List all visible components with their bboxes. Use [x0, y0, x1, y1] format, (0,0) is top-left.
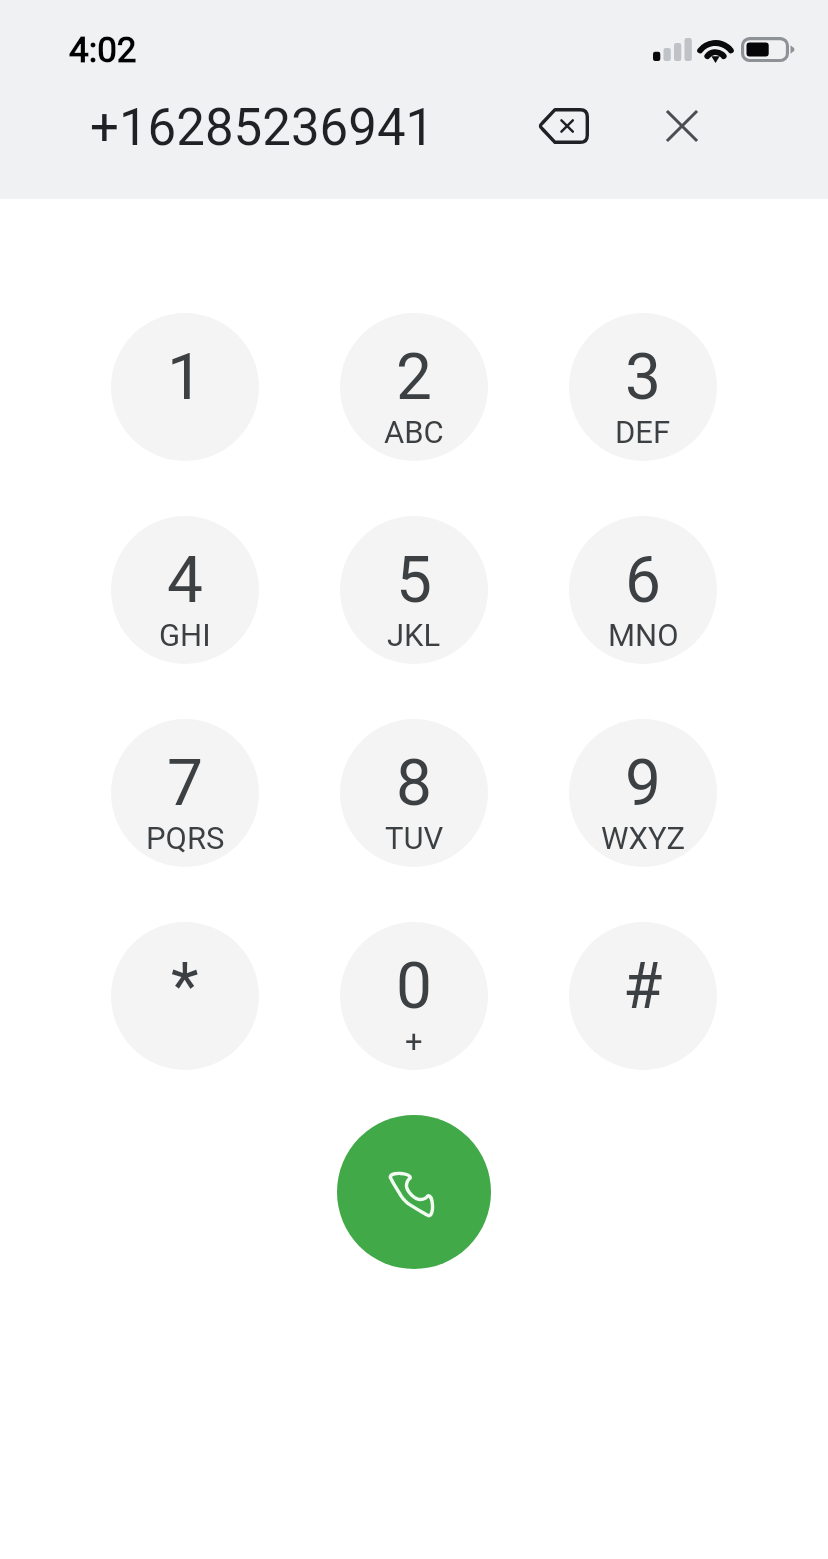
staticText: JKL: [387, 617, 441, 653]
staticText: GHI: [159, 617, 211, 653]
staticText: +16285236941: [90, 98, 435, 158]
staticText: 4: [167, 543, 203, 618]
staticText: WXYZ: [601, 820, 686, 856]
button[interactable]: Close: [638, 82, 726, 170]
staticText: 0: [396, 949, 432, 1024]
staticText: 6: [625, 543, 661, 618]
button[interactable]: 6: [569, 516, 717, 664]
button[interactable]: 5: [340, 516, 488, 664]
button[interactable]: 8: [340, 719, 488, 867]
staticText: *: [171, 949, 199, 1024]
staticText: DEF: [615, 414, 671, 450]
staticText: PQRS: [146, 820, 225, 856]
button[interactable]: 2: [340, 313, 488, 461]
staticText: 9: [625, 746, 661, 821]
button[interactable]: *: [111, 922, 259, 1070]
button[interactable]: Backspace: [519, 82, 607, 170]
staticText: #: [623, 949, 663, 1024]
staticText: MNO: [608, 617, 679, 653]
button[interactable]: 0: [340, 922, 488, 1070]
staticText: 4:02: [69, 30, 137, 71]
staticText: ABC: [384, 414, 444, 450]
button[interactable]: Call: [337, 1115, 491, 1269]
staticText: 8: [396, 746, 432, 821]
staticText: 2: [396, 340, 432, 415]
staticText: 1: [167, 340, 203, 415]
button[interactable]: #: [569, 922, 717, 1070]
button[interactable]: 1: [111, 313, 259, 461]
staticText: 3: [625, 340, 661, 415]
button[interactable]: 9: [569, 719, 717, 867]
button[interactable]: 4: [111, 516, 259, 664]
button[interactable]: 7: [111, 719, 259, 867]
staticText: 5: [396, 543, 432, 618]
staticText: TUV: [385, 820, 444, 856]
staticText: 7: [167, 746, 203, 821]
button[interactable]: 3: [569, 313, 717, 461]
staticText: +: [405, 1023, 423, 1059]
